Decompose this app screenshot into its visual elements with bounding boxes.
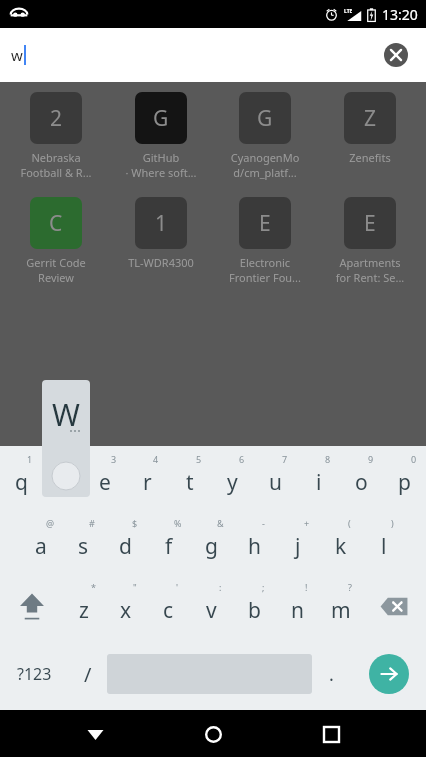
- button[interactable]: -: [233, 510, 276, 574]
- button[interactable]: &: [190, 510, 233, 574]
- staticText: Gerrit Code: [7, 255, 105, 270]
- staticText: GitHub: [112, 150, 210, 165]
- staticText: y: [227, 468, 238, 497]
- button[interactable]: Enter: [351, 638, 426, 710]
- staticText: #: [89, 517, 95, 529]
- staticText: v: [206, 596, 217, 625]
- button[interactable]: +: [276, 510, 319, 574]
- button[interactable]: Shift: [0, 574, 63, 638]
- staticText: u: [269, 468, 282, 497]
- button[interactable]: %: [147, 510, 190, 574]
- button[interactable]: 6: [211, 446, 254, 510]
- staticText: CyanogenMo: [216, 150, 314, 165]
- button[interactable]: *: [63, 574, 105, 638]
- staticText: 13:20: [382, 5, 418, 24]
- button[interactable]: Clear search: [384, 43, 408, 67]
- staticText: f: [165, 532, 173, 561]
- button[interactable]: ?123: [0, 638, 68, 710]
- button[interactable]: 4: [126, 446, 168, 510]
- staticText: ?123: [17, 663, 52, 685]
- button[interactable]: Recents: [308, 711, 354, 757]
- staticText: 4: [153, 453, 159, 465]
- button[interactable]: 9: [340, 446, 383, 510]
- staticText: C: [49, 209, 63, 238]
- button[interactable]: .: [312, 638, 351, 710]
- button[interactable]: 7: [254, 446, 297, 510]
- staticText: $: [132, 517, 138, 529]
- button[interactable]: 2: [7, 92, 105, 180]
- staticText: a: [35, 532, 47, 561]
- button[interactable]: ': [147, 574, 190, 638]
- staticText: t: [186, 468, 194, 497]
- staticText: ): [391, 517, 394, 529]
- button[interactable]: E: [216, 197, 314, 285]
- staticText: 1: [27, 453, 33, 465]
- staticText: k: [335, 532, 347, 561]
- button[interactable]: 3: [84, 446, 126, 510]
- button[interactable]: Home: [190, 711, 236, 757]
- staticText: Frontier Fou...: [216, 270, 314, 285]
- button[interactable]: C: [7, 197, 105, 285]
- button[interactable]: @: [20, 510, 62, 574]
- staticText: d/cm_platf...: [216, 165, 314, 180]
- staticText: Electronic: [216, 255, 314, 270]
- staticText: Zenefits: [321, 150, 419, 165]
- staticText: j: [295, 532, 301, 561]
- button[interactable]: Backspace: [362, 574, 426, 638]
- button[interactable]: G: [112, 92, 210, 180]
- staticText: b: [248, 596, 261, 625]
- staticText: (: [348, 517, 351, 529]
- button[interactable]: $: [104, 510, 147, 574]
- button[interactable]: 1: [112, 197, 210, 270]
- staticText: z: [79, 596, 89, 625]
- staticText: m: [331, 596, 351, 625]
- staticText: Football & R...: [7, 165, 105, 180]
- button[interactable]: ;: [233, 574, 276, 638]
- button[interactable]: :: [190, 574, 233, 638]
- staticText: s: [78, 532, 89, 561]
- staticText: /: [84, 661, 92, 688]
- staticText: *: [91, 581, 96, 593]
- staticText: Apartments: [321, 255, 419, 270]
- staticText: · Where soft...: [112, 165, 210, 180]
- button[interactable]: 8: [297, 446, 340, 510]
- staticText: i: [316, 468, 322, 497]
- button[interactable]: (: [319, 510, 362, 574]
- button[interactable]: E: [321, 197, 419, 285]
- button[interactable]: ?: [319, 574, 362, 638]
- button[interactable]: 1: [0, 446, 42, 510]
- button[interactable]: Z: [321, 92, 419, 165]
- button[interactable]: !: [276, 574, 319, 638]
- staticText: LTE: [344, 8, 353, 15]
- staticText: for Rent: Se...: [321, 270, 419, 285]
- staticText: 3: [111, 453, 117, 465]
- button[interactable]: 5: [168, 446, 211, 510]
- staticText: Nebraska: [7, 150, 105, 165]
- staticText: e: [99, 468, 111, 497]
- staticText: 8: [325, 453, 331, 465]
- button[interactable]: G: [216, 92, 314, 180]
- staticText: 0: [411, 453, 417, 465]
- button[interactable]: #: [62, 510, 104, 574]
- staticText: w: [11, 45, 23, 65]
- staticText: x: [120, 596, 132, 625]
- staticText: E: [259, 209, 271, 238]
- staticText: !: [305, 581, 308, 593]
- staticText: 2: [50, 104, 63, 133]
- button[interactable]: /: [68, 638, 107, 710]
- staticText: W: [52, 394, 80, 435]
- staticText: ": [133, 581, 137, 593]
- staticText: h: [248, 532, 261, 561]
- staticText: Review: [7, 270, 105, 285]
- button[interactable]: ": [105, 574, 147, 638]
- staticText: 5: [196, 453, 202, 465]
- button[interactable]: ): [362, 510, 405, 574]
- button[interactable]: 2: [42, 446, 84, 510]
- staticText: .: [329, 662, 334, 687]
- staticText: w: [55, 468, 72, 497]
- button[interactable]: Back: [72, 711, 118, 757]
- button[interactable]: 0: [383, 446, 426, 510]
- staticText: ?: [348, 581, 352, 593]
- staticText: G: [257, 104, 273, 133]
